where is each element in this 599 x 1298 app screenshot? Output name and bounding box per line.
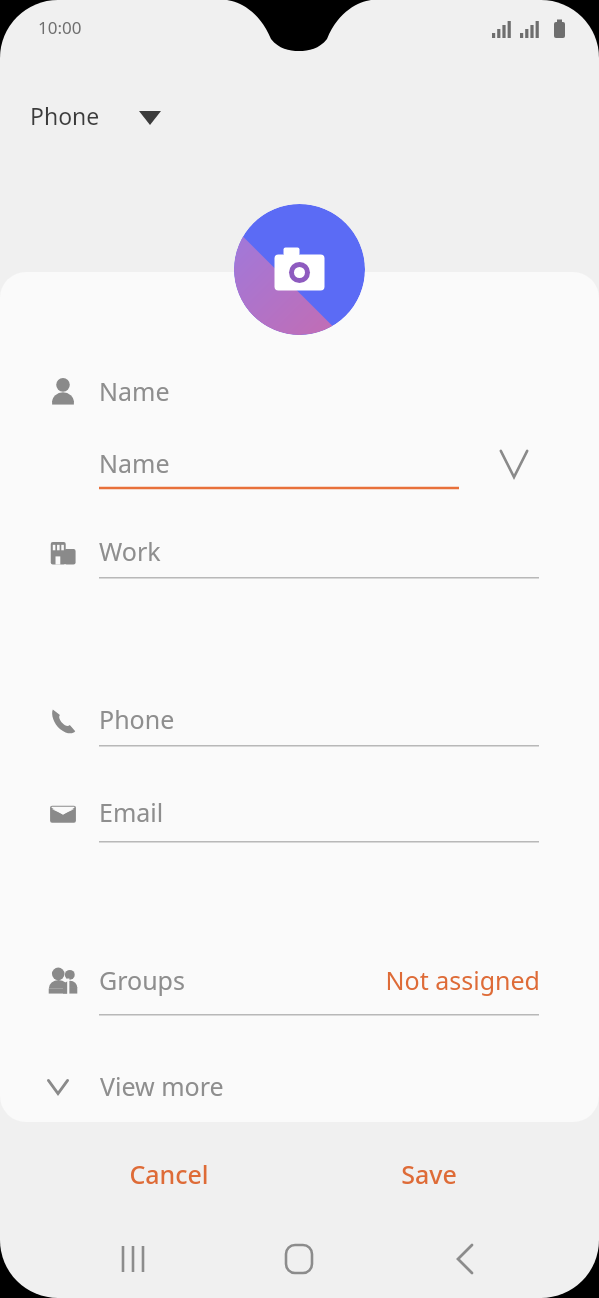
staticText: Save xyxy=(401,1157,457,1191)
staticText: Not assigned xyxy=(320,963,540,1001)
staticText: Work xyxy=(99,534,161,568)
button[interactable]: Recents xyxy=(88,1228,178,1290)
button[interactable]: Cancel xyxy=(78,1146,260,1202)
staticText: View more xyxy=(100,1069,224,1103)
button[interactable]: Add contact photo xyxy=(234,204,365,335)
staticText: 10:00 xyxy=(38,16,82,39)
button[interactable]: Phone xyxy=(20,92,180,138)
staticText: Phone xyxy=(30,100,100,131)
button[interactable]: Name xyxy=(99,436,539,494)
staticText: Phone xyxy=(99,702,175,736)
button[interactable]: Save xyxy=(338,1146,520,1202)
staticText: Name xyxy=(99,446,170,480)
button[interactable]: Back xyxy=(420,1228,510,1290)
button[interactable]: Groups xyxy=(20,951,580,1013)
button[interactable]: Expand name fields xyxy=(492,442,536,486)
staticText: Email xyxy=(99,795,164,829)
staticText: Groups xyxy=(99,963,185,997)
staticText: Cancel xyxy=(129,1157,209,1191)
staticText: Name xyxy=(99,374,170,408)
button[interactable]: Work xyxy=(20,522,580,584)
button[interactable]: Email xyxy=(20,783,580,845)
button[interactable]: View more xyxy=(20,1058,580,1116)
button[interactable]: Home xyxy=(254,1228,344,1290)
button[interactable]: Name xyxy=(20,362,580,424)
button[interactable]: Phone xyxy=(20,690,580,752)
